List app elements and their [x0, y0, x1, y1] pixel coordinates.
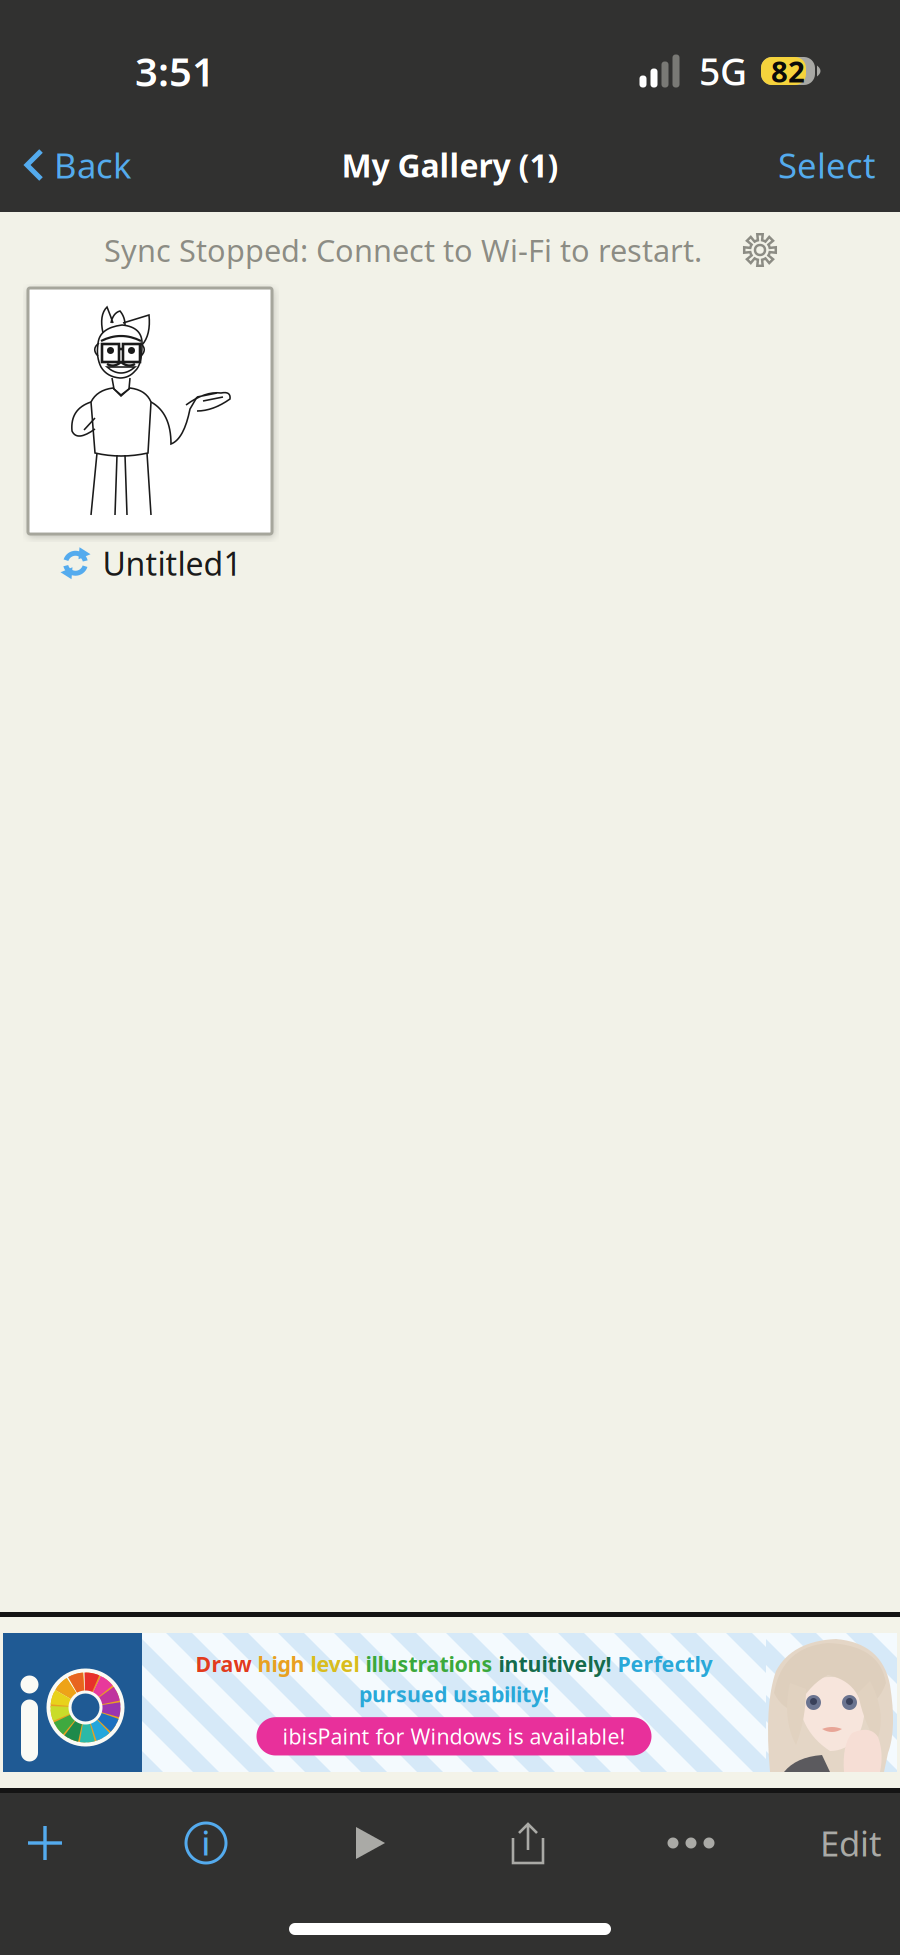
staticText: pursued usability!	[359, 1680, 549, 1708]
staticText: Untitled1	[102, 542, 241, 584]
staticText: Perfectly	[617, 1649, 712, 1678]
button[interactable]: Edit	[781, 1799, 900, 1887]
staticText: My Gallery (1)	[341, 144, 558, 186]
staticText: Edit	[820, 1820, 882, 1866]
button[interactable]: Back	[0, 128, 156, 202]
button[interactable]: Play	[300, 1799, 440, 1887]
staticText: Draw	[195, 1649, 257, 1678]
staticText: 82	[771, 51, 805, 90]
staticText: 5G	[699, 46, 747, 96]
staticText: Select	[778, 142, 876, 188]
button[interactable]: Share	[458, 1799, 598, 1887]
button[interactable]: Select	[754, 128, 900, 202]
button[interactable]: New canvas	[0, 1799, 90, 1887]
button[interactable]: More	[621, 1799, 761, 1887]
button[interactable]: Information	[136, 1799, 276, 1887]
staticText: Back	[54, 142, 132, 188]
staticText: ibisPaint for Windows is available!	[282, 1722, 625, 1750]
button[interactable]: Sync settings	[728, 218, 792, 282]
staticText: Sync Stopped: Connect to Wi-Fi to restar…	[104, 230, 702, 270]
staticText: 3:51	[135, 44, 215, 97]
staticText: level	[310, 1649, 365, 1678]
staticText: intuitively!	[498, 1649, 617, 1678]
staticText: i	[201, 1822, 210, 1864]
button[interactable]	[28, 288, 272, 534]
button[interactable]: ibisPaint for Windows advertisement	[0, 1612, 900, 1793]
staticText: high	[257, 1649, 310, 1678]
staticText: illustrations	[365, 1649, 498, 1678]
